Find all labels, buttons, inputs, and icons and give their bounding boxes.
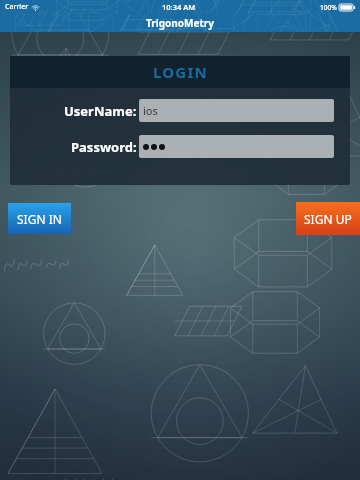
staticText: Password: (71, 138, 137, 156)
staticText: Carrier (5, 2, 29, 12)
staticText: SIGN UP (304, 211, 352, 227)
staticText: 100% (320, 3, 337, 12)
staticText: LOGIN (153, 62, 208, 82)
button[interactable]: SIGN IN (8, 203, 71, 234)
staticText: ios (143, 103, 158, 118)
staticText: SIGN IN (17, 211, 62, 227)
staticText: TrigonoMetry (146, 16, 214, 30)
button[interactable] (139, 135, 334, 158)
staticText: 10:34 AM (162, 2, 196, 12)
button[interactable]: ios (139, 99, 334, 122)
button[interactable]: SIGN UP (296, 202, 360, 235)
staticText: UserName: (64, 102, 137, 120)
